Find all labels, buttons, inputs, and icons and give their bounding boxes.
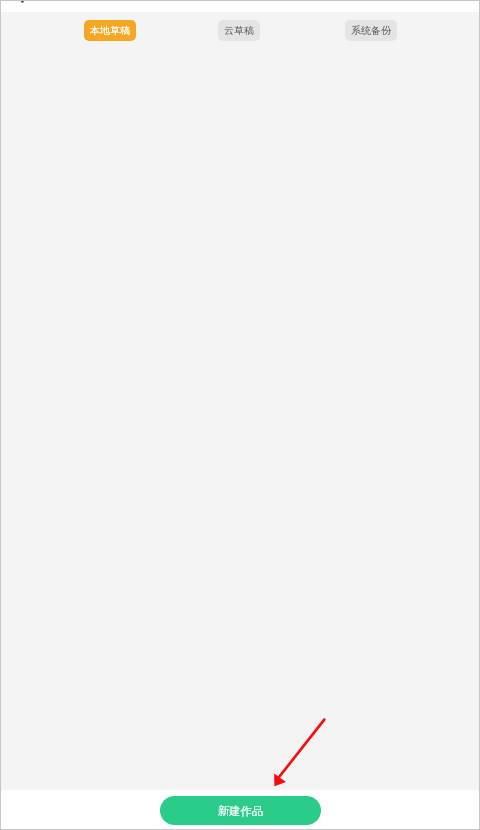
staticText: 新建作品 [218, 804, 264, 818]
button[interactable]: 云草稿 [218, 20, 260, 41]
staticText: 本地草稿 [90, 24, 130, 37]
button[interactable]: 新建作品 [160, 796, 321, 825]
button[interactable]: 系统备份 [345, 20, 397, 41]
staticText: 云草稿 [224, 24, 254, 37]
button[interactable]: 本地草稿 [84, 20, 136, 41]
other: Annotation arrow pointing to the new pro… [0, 0, 480, 830]
staticText: 系统备份 [351, 24, 391, 37]
